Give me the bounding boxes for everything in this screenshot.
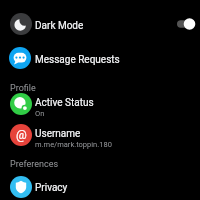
staticText: Dark Mode: [35, 20, 84, 32]
staticText: Privacy: [35, 182, 68, 194]
staticText: Username: [35, 128, 81, 140]
staticText: On: [35, 109, 45, 118]
button[interactable]: Message Requests: [0, 42, 200, 74]
button[interactable]: Privacy: [0, 172, 200, 200]
staticText: m.me/mark.toppin.180: [35, 140, 112, 149]
staticText: Message Requests: [35, 54, 120, 66]
staticText: Active Status: [35, 97, 94, 109]
button[interactable]: Active Status: [0, 92, 200, 121]
staticText: @: [16, 128, 27, 142]
staticText: Preferences: [10, 159, 59, 170]
staticText: Profile: [10, 83, 36, 94]
button[interactable]: @: [0, 122, 200, 152]
button[interactable]: Dark Mode: [0, 6, 200, 42]
